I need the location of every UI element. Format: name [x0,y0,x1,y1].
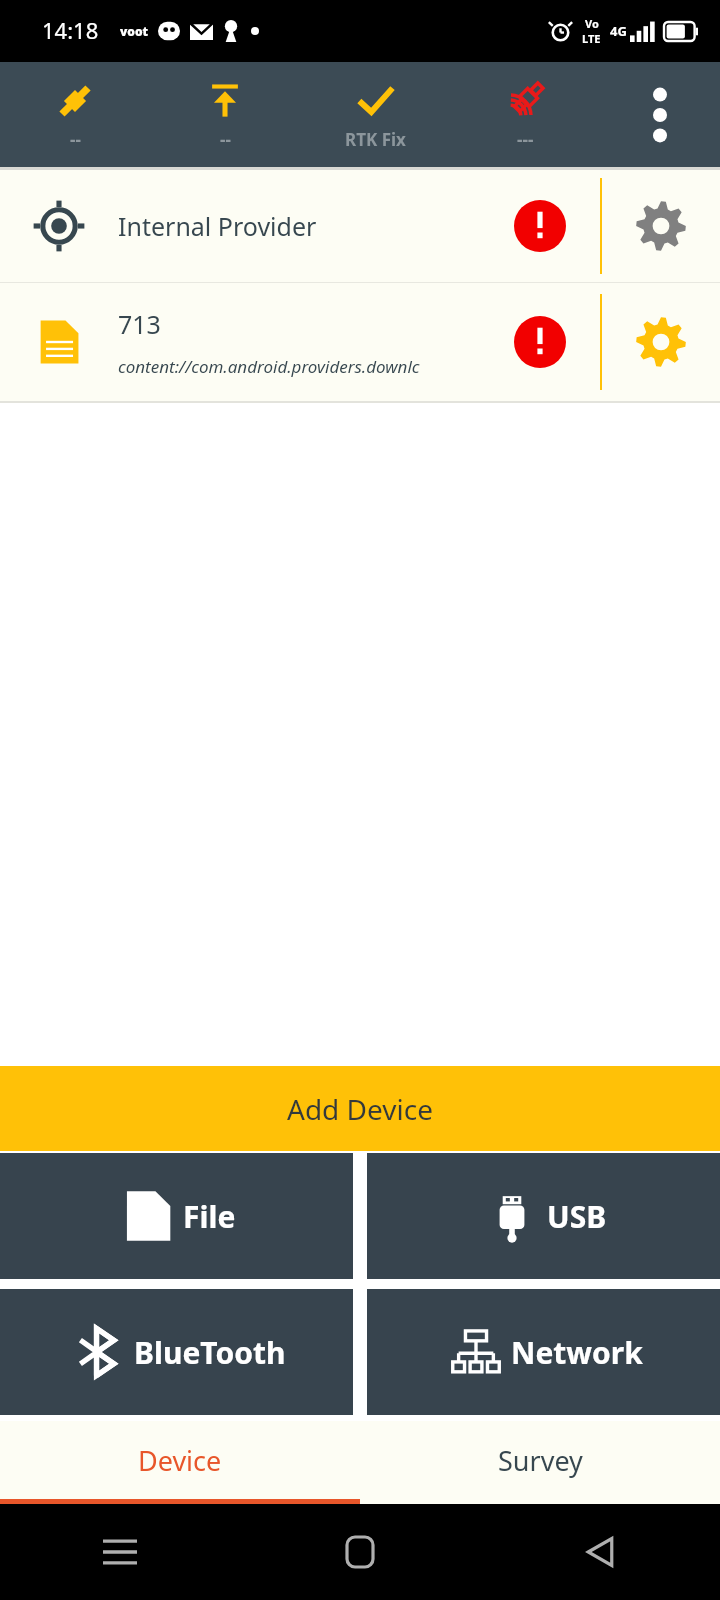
staticText: -- [220,128,231,151]
staticText: --- [517,128,534,151]
staticText: USB [547,1196,607,1237]
other: Correction signal [502,78,548,124]
button[interactable]: More options [600,62,720,167]
button[interactable]: Recent apps [0,1504,240,1600]
button[interactable]: BlueTooth [0,1289,353,1415]
other: Fix status [352,78,398,124]
staticText: -- [70,128,81,151]
staticText: content://com.android.providers.downlc [118,355,420,378]
other: Satellites [52,78,98,124]
staticText: Survey [498,1442,583,1479]
button[interactable]: Status error [480,283,600,401]
button[interactable]: Upload [150,62,300,167]
button[interactable]: Network [367,1289,720,1415]
button[interactable]: Settings [602,283,720,401]
staticText: File [183,1196,236,1237]
staticText: Internal Provider [118,209,317,243]
staticText: LTE [582,31,601,46]
button[interactable]: File [0,1153,353,1279]
button[interactable]: Device [0,1421,360,1499]
staticText: voot [120,23,149,39]
button[interactable]: Correction signal [450,62,600,167]
other: Upload [202,78,248,124]
staticText: Vo [585,16,599,31]
staticText: Network [511,1332,643,1373]
staticText: Add Device [287,1090,433,1128]
staticText: BlueTooth [134,1332,286,1373]
button[interactable]: Survey [360,1421,720,1499]
staticText: 713 [118,307,161,341]
button[interactable]: Satellites [0,62,150,167]
button[interactable]: Home [240,1504,480,1600]
button[interactable]: USB [367,1153,720,1279]
button[interactable]: Status error [480,170,600,282]
staticText: 4G [610,22,627,40]
button[interactable]: Internal Provider [0,170,720,282]
staticText: Device [138,1442,222,1479]
staticText: 14:18 [42,15,99,45]
button[interactable]: Fix status [300,62,450,167]
button[interactable]: Back [480,1504,720,1600]
staticText: RTK Fix [345,128,406,151]
button[interactable]: 713 [0,283,720,401]
button[interactable]: Add Device [0,1066,720,1151]
button[interactable]: Settings [602,170,720,282]
